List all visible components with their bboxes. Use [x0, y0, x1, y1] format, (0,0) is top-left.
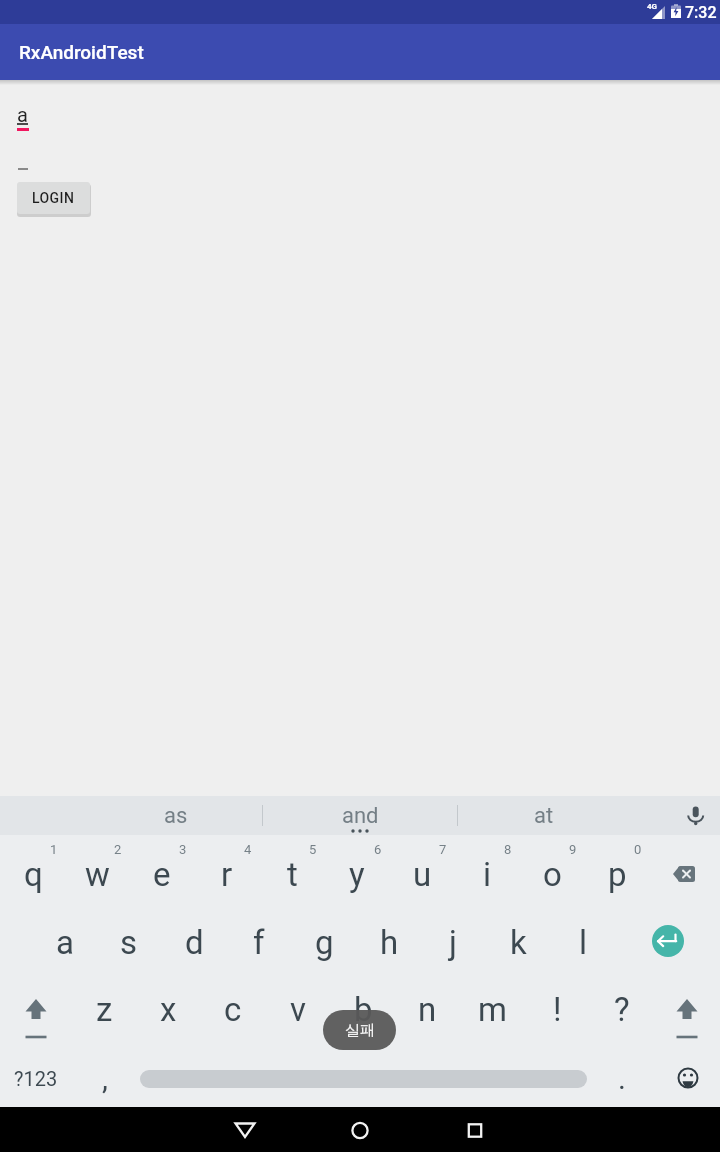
- button[interactable]: d: [162, 912, 226, 972]
- button[interactable]: w: [65, 844, 129, 904]
- button[interactable]: [652, 844, 716, 904]
- staticText: d: [185, 923, 204, 962]
- button[interactable]: u: [390, 844, 454, 904]
- button[interactable]: j: [421, 912, 485, 972]
- staticText: u: [413, 855, 432, 894]
- button[interactable]: !: [525, 979, 589, 1039]
- button[interactable]: b: [331, 979, 395, 1039]
- button[interactable]: [336, 1107, 384, 1152]
- staticText: q: [24, 855, 43, 894]
- staticText: i: [483, 855, 492, 894]
- button[interactable]: x: [136, 979, 200, 1039]
- staticText: 2: [114, 842, 122, 857]
- staticText: o: [543, 855, 562, 894]
- staticText: p: [608, 855, 627, 894]
- button[interactable]: [655, 979, 719, 1039]
- staticText: RxAndroidTest: [19, 41, 144, 63]
- staticText: and: [342, 803, 379, 829]
- button[interactable]: p: [585, 844, 649, 904]
- button[interactable]: y: [325, 844, 389, 904]
- staticText: v: [290, 990, 306, 1029]
- staticText: a: [17, 103, 28, 126]
- button[interactable]: as: [96, 796, 256, 835]
- staticText: t: [287, 855, 298, 894]
- button[interactable]: o: [520, 844, 584, 904]
- staticText: 1: [50, 842, 58, 857]
- button[interactable]: and: [280, 796, 440, 835]
- staticText: h: [380, 923, 399, 962]
- staticText: 6: [374, 842, 382, 857]
- staticText: c: [224, 990, 242, 1029]
- button[interactable]: at: [464, 796, 624, 835]
- staticText: y: [349, 855, 365, 894]
- staticText: 9: [569, 842, 577, 857]
- button[interactable]: s: [97, 912, 161, 972]
- button[interactable]: i: [455, 844, 519, 904]
- button[interactable]: ,: [73, 1048, 137, 1108]
- staticText: at: [534, 803, 554, 829]
- button[interactable]: n: [395, 979, 459, 1039]
- staticText: LOGIN: [32, 190, 75, 206]
- staticText: 8: [504, 842, 512, 857]
- staticText: 실패: [345, 1021, 375, 1040]
- staticText: a: [56, 923, 74, 962]
- button[interactable]: LOGIN: [17, 182, 90, 214]
- staticText: !: [553, 990, 562, 1029]
- staticText: z: [96, 990, 113, 1029]
- staticText: x: [160, 990, 177, 1029]
- staticText: g: [315, 923, 334, 962]
- button[interactable]: [221, 1107, 269, 1152]
- staticText: s: [120, 923, 138, 962]
- staticText: 7:32: [685, 3, 717, 22]
- staticText: 3: [179, 842, 187, 857]
- button[interactable]: [451, 1107, 499, 1152]
- button[interactable]: f: [227, 912, 291, 972]
- staticText: k: [510, 923, 527, 962]
- staticText: j: [449, 923, 457, 962]
- staticText: n: [418, 990, 437, 1029]
- staticText: ?: [614, 990, 630, 1029]
- staticText: w: [85, 855, 110, 894]
- staticText: ?123: [14, 1067, 58, 1090]
- button[interactable]: v: [266, 979, 330, 1039]
- staticText: r: [221, 855, 233, 894]
- button[interactable]: [4, 979, 68, 1039]
- staticText: 4: [244, 842, 252, 857]
- staticText: 4G: [647, 2, 658, 11]
- staticText: f: [253, 923, 265, 962]
- staticText: e: [153, 855, 171, 894]
- staticText: as: [164, 803, 188, 829]
- button[interactable]: [652, 925, 684, 957]
- button[interactable]: [656, 1049, 720, 1107]
- staticText: 0: [634, 842, 642, 857]
- button[interactable]: [140, 1070, 587, 1088]
- button[interactable]: q: [1, 844, 65, 904]
- button[interactable]: e: [130, 844, 194, 904]
- button[interactable]: ?123: [4, 1049, 68, 1107]
- staticText: 7: [439, 842, 447, 857]
- button[interactable]: z: [72, 979, 136, 1039]
- button[interactable]: t: [260, 844, 324, 904]
- button[interactable]: a: [33, 912, 97, 972]
- button[interactable]: .: [590, 1048, 654, 1108]
- button[interactable]: c: [201, 979, 265, 1039]
- staticText: 5: [309, 842, 317, 857]
- button[interactable]: k: [486, 912, 550, 972]
- staticText: l: [579, 923, 588, 962]
- button[interactable]: m: [460, 979, 524, 1039]
- staticText: .: [618, 1061, 626, 1096]
- staticText: b: [354, 990, 373, 1029]
- button[interactable]: l: [551, 912, 615, 972]
- staticText: ,: [102, 1061, 108, 1096]
- button[interactable]: ?: [590, 979, 654, 1039]
- button[interactable]: g: [292, 912, 356, 972]
- button[interactable]: [686, 804, 706, 826]
- button[interactable]: r: [195, 844, 259, 904]
- button[interactable]: h: [357, 912, 421, 972]
- staticText: m: [478, 990, 507, 1029]
